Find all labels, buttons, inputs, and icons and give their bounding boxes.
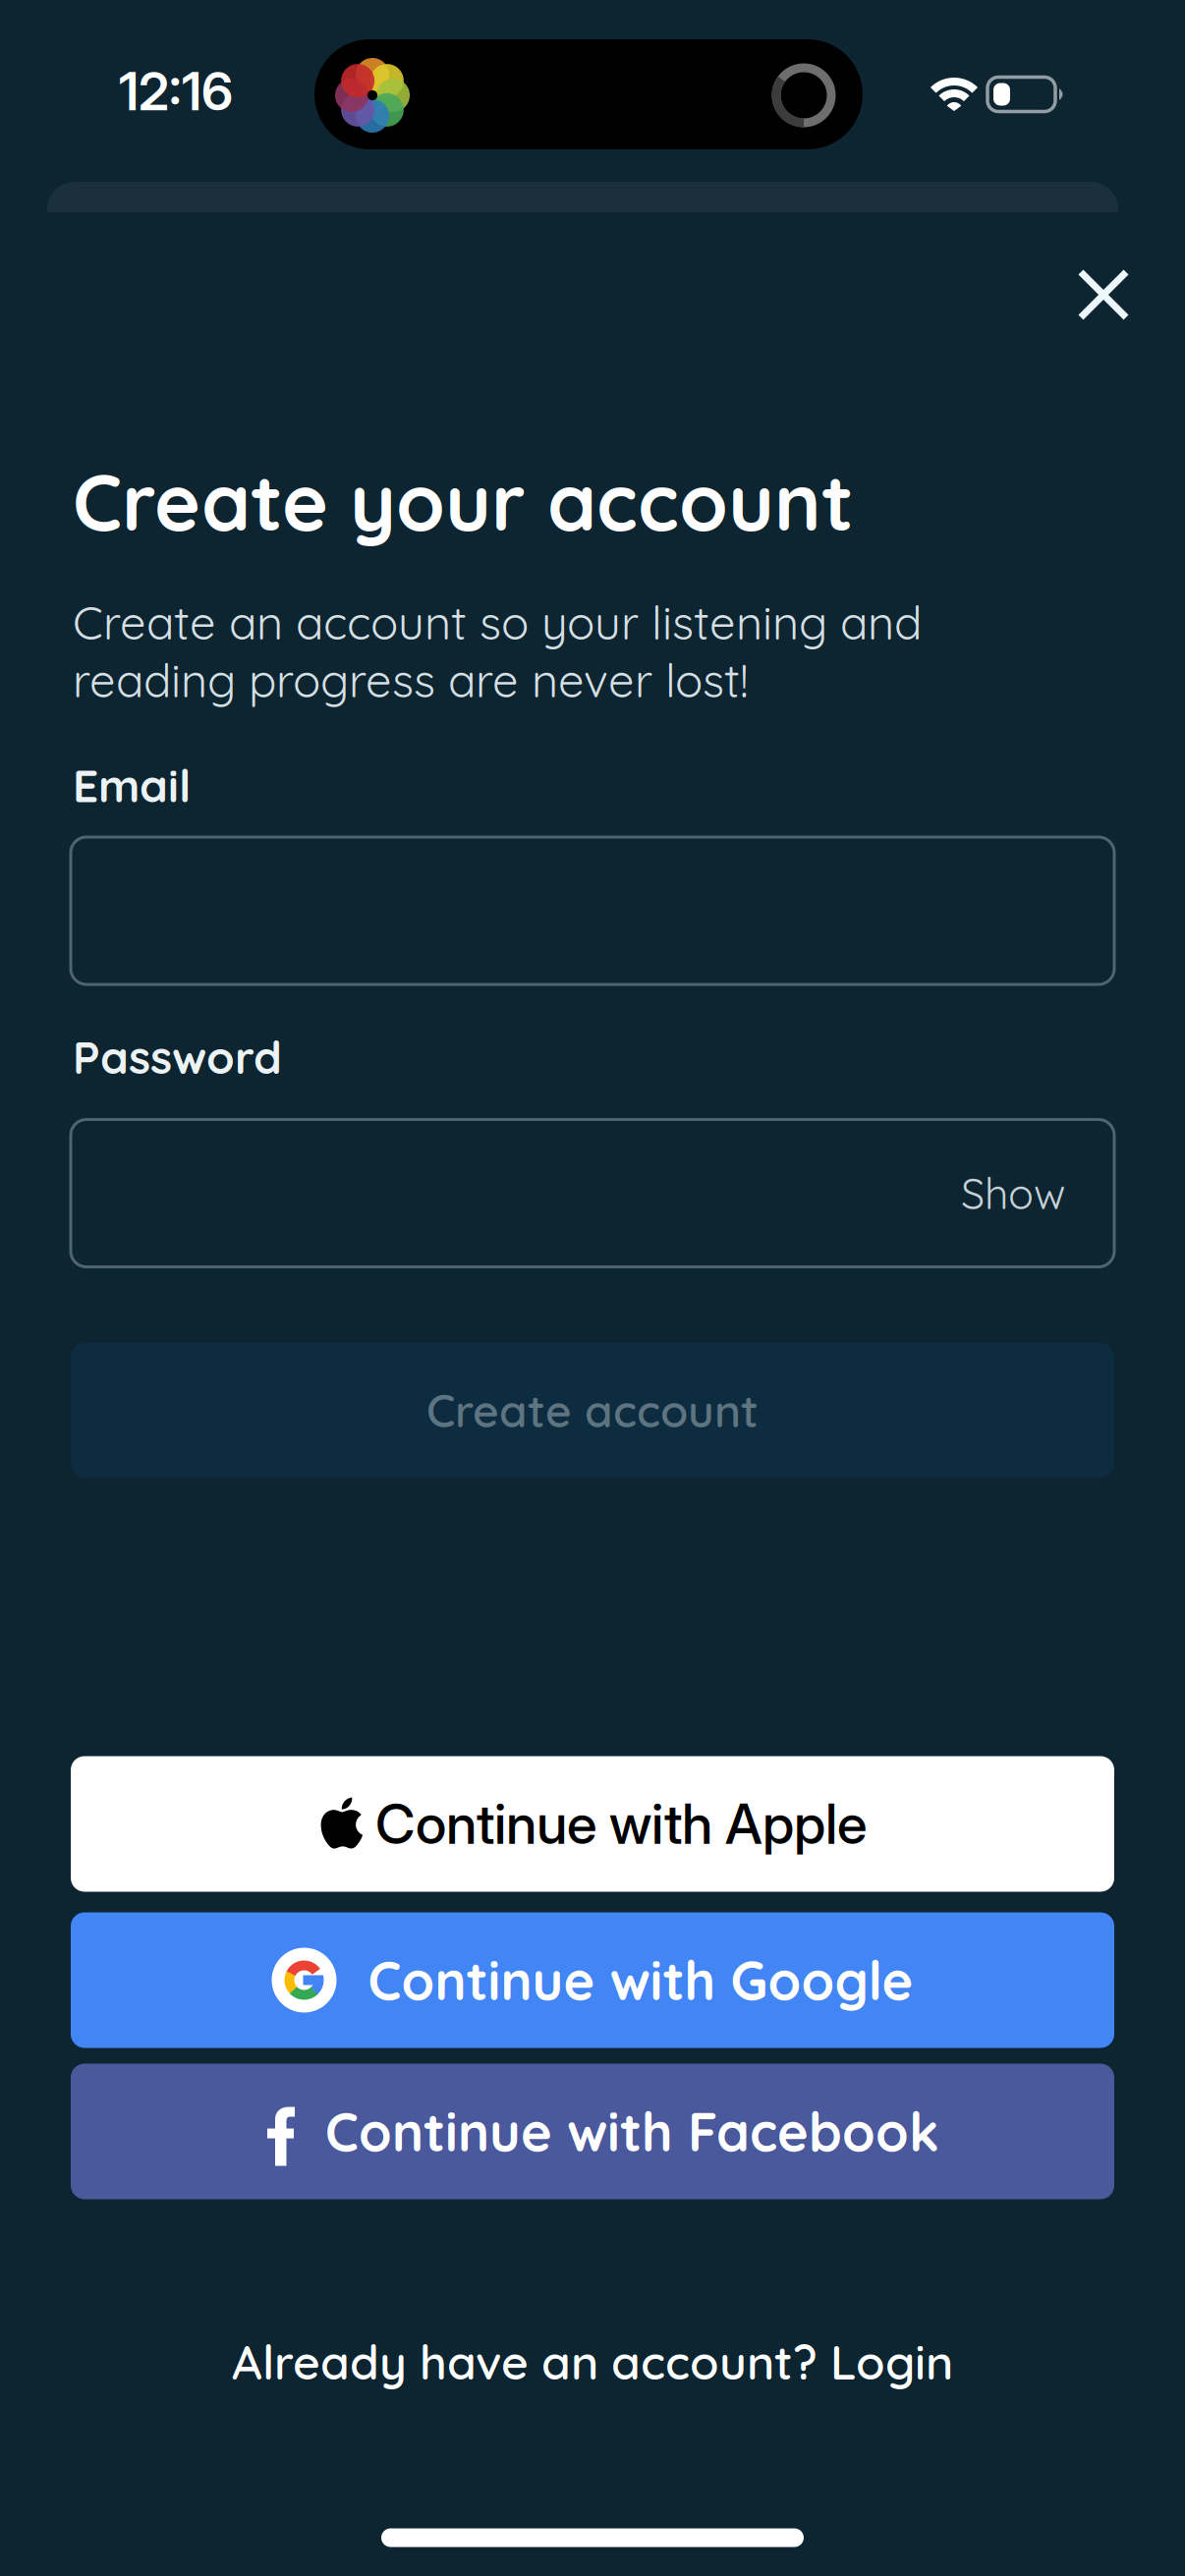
staticText: Password — [73, 1029, 282, 1085]
button[interactable]: Create account — [71, 1343, 1114, 1478]
staticText: Show — [961, 1167, 1065, 1220]
button[interactable]: Close — [1080, 271, 1127, 318]
staticText: Continue with Google — [368, 1947, 913, 2013]
staticText: Continue with Apple — [375, 1791, 867, 1857]
button[interactable]: Email — [71, 837, 1114, 984]
staticText: Already have an account? Login — [232, 2332, 953, 2391]
button[interactable]: Continue with Facebook — [71, 2064, 1114, 2199]
button[interactable]: Continue with Google — [71, 1912, 1114, 2048]
button[interactable]: Already have an account? Login — [232, 2332, 953, 2391]
staticText: 12:16 — [119, 60, 233, 123]
staticText: Create your account — [73, 452, 854, 550]
button[interactable]: Password — [71, 1120, 1114, 1267]
button[interactable]: Continue with Apple — [71, 1756, 1114, 1892]
staticText: Create account — [426, 1382, 759, 1439]
staticText: Create an account so your listening and — [73, 593, 922, 651]
staticText: reading progress are never lost! — [73, 651, 749, 709]
staticText: Email — [73, 757, 191, 813]
button[interactable]: Show — [961, 1167, 1065, 1220]
staticText: Continue with Facebook — [325, 2098, 939, 2165]
